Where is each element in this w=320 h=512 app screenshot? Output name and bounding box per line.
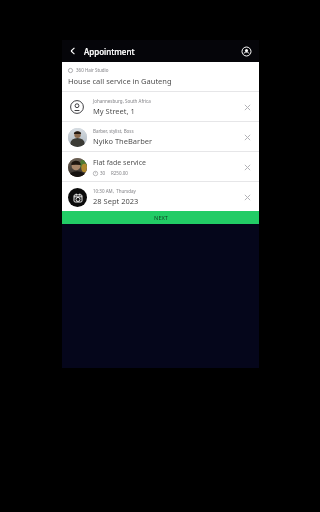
button[interactable]: Johannesburg, South Africa xyxy=(62,92,259,121)
button[interactable]: Remove xyxy=(240,160,254,174)
staticText: Flat fade service xyxy=(93,158,146,168)
staticText: My Street, 1 xyxy=(93,106,135,116)
staticText: House call service in Gauteng xyxy=(68,76,172,86)
button[interactable]: Profile xyxy=(239,44,253,58)
staticText: R250.00 xyxy=(111,170,128,176)
staticText: 10:30 AM, Thursday xyxy=(93,188,136,194)
button[interactable]: NEXT xyxy=(62,211,259,224)
button[interactable]: Flat fade service xyxy=(62,152,259,181)
staticText: Nyiko TheBarber xyxy=(93,136,153,146)
button[interactable]: Remove xyxy=(240,100,254,114)
button[interactable]: Remove xyxy=(240,190,254,204)
staticText: Appointment xyxy=(84,46,135,57)
button[interactable]: Barber, stylist, Boss xyxy=(62,122,259,151)
button[interactable]: Back xyxy=(65,43,81,59)
staticText: Barber, stylist, Boss xyxy=(93,128,134,134)
button[interactable]: Remove xyxy=(240,130,254,144)
staticText: NEXT xyxy=(154,214,168,221)
staticText: 360 Hair Studio xyxy=(76,67,109,73)
staticText: Johannesburg, South Africa xyxy=(93,98,151,104)
staticText: 28 Sept 2023 xyxy=(93,196,139,206)
staticText: 30 xyxy=(100,170,106,176)
button[interactable]: 10:30 AM, Thursday xyxy=(62,182,259,211)
